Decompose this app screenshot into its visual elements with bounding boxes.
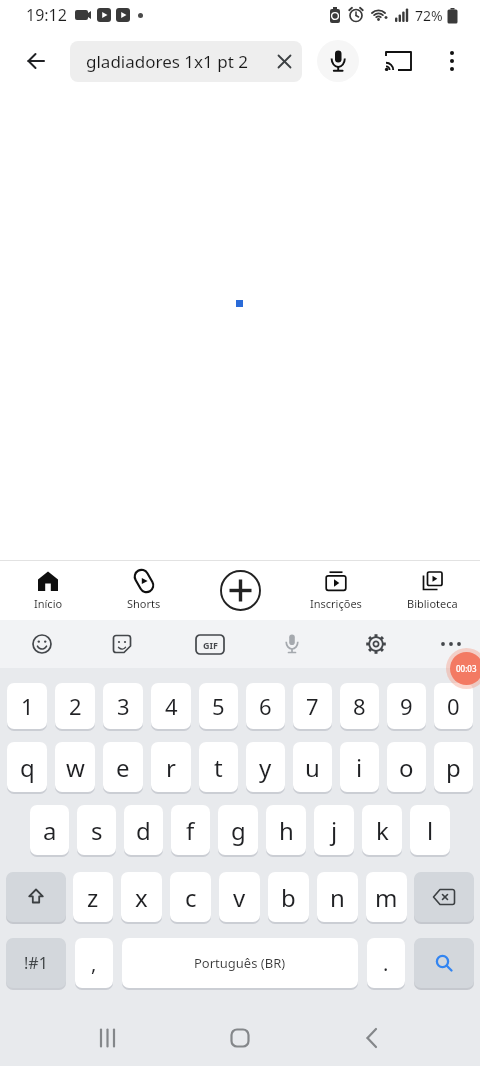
button[interactable]: 8 xyxy=(340,683,379,729)
button[interactable]: i xyxy=(340,742,379,792)
button[interactable]: t xyxy=(199,742,238,792)
button[interactable] xyxy=(434,43,470,79)
button[interactable] xyxy=(378,41,418,81)
staticText: h xyxy=(279,814,294,847)
button[interactable]: j xyxy=(314,805,354,855)
button[interactable] xyxy=(105,627,139,661)
button[interactable] xyxy=(414,872,474,922)
button[interactable]: z xyxy=(73,872,113,922)
button[interactable]: r xyxy=(151,742,191,792)
button[interactable]: m xyxy=(366,872,407,922)
staticText: d xyxy=(136,814,151,847)
button[interactable]: s xyxy=(77,805,116,855)
button[interactable] xyxy=(25,627,59,661)
button[interactable] xyxy=(6,872,66,922)
button[interactable]: b xyxy=(268,872,309,922)
button[interactable]: v xyxy=(219,872,260,922)
staticText: n xyxy=(330,881,345,914)
button[interactable]: k xyxy=(362,805,402,855)
button[interactable] xyxy=(359,627,393,661)
button[interactable]: 9 xyxy=(387,683,426,729)
staticText: 0 xyxy=(447,691,460,721)
staticText: !#1 xyxy=(24,952,48,974)
button[interactable]: y xyxy=(246,742,285,792)
button[interactable]: GIF xyxy=(191,625,229,663)
button[interactable]: p xyxy=(434,742,473,792)
staticText: Início xyxy=(34,596,63,611)
button[interactable] xyxy=(414,938,474,988)
button[interactable]: Início xyxy=(0,561,96,620)
staticText: p xyxy=(446,751,461,784)
staticText: c xyxy=(185,881,197,914)
button[interactable] xyxy=(192,561,288,620)
button[interactable]: 7 xyxy=(293,683,332,729)
button[interactable]: 1 xyxy=(7,683,47,729)
staticText: 19:12 xyxy=(26,4,67,26)
button[interactable]: 6 xyxy=(246,683,285,729)
button[interactable] xyxy=(14,39,58,83)
staticText: 4 xyxy=(165,691,178,721)
button[interactable]: w xyxy=(55,742,95,792)
staticText: j xyxy=(331,814,338,847)
staticText: 1 xyxy=(21,691,34,721)
staticText: Shorts xyxy=(127,596,161,611)
button[interactable] xyxy=(434,627,468,661)
button[interactable]: a xyxy=(30,805,69,855)
staticText: 72% xyxy=(415,6,443,25)
button[interactable]: q xyxy=(7,742,47,792)
button[interactable]: o xyxy=(387,742,426,792)
button[interactable] xyxy=(275,627,309,661)
staticText: . xyxy=(383,950,389,977)
staticText: z xyxy=(87,881,99,914)
staticText: i xyxy=(356,751,363,784)
staticText: y xyxy=(259,751,272,784)
staticText: 9 xyxy=(400,691,413,721)
button[interactable]: 4 xyxy=(151,683,191,729)
button[interactable]: 00:03 xyxy=(450,652,480,685)
staticText: x xyxy=(135,881,148,914)
button[interactable]: u xyxy=(293,742,332,792)
staticText: Inscrições xyxy=(310,596,362,611)
button[interactable]: Shorts xyxy=(96,561,192,620)
staticText: GIF xyxy=(203,639,218,651)
button[interactable]: l xyxy=(410,805,450,855)
staticText: a xyxy=(43,814,57,847)
button[interactable]: gladiadores 1x1 pt 2 xyxy=(70,41,302,82)
staticText: Português (BR) xyxy=(194,954,286,972)
button[interactable]: 2 xyxy=(55,683,95,729)
staticText: k xyxy=(376,814,389,847)
button[interactable] xyxy=(216,1014,264,1062)
button[interactable]: f xyxy=(171,805,210,855)
staticText: 2 xyxy=(69,691,82,721)
button[interactable]: 0 xyxy=(434,683,473,729)
staticText: m xyxy=(375,881,398,914)
button[interactable]: x xyxy=(121,872,162,922)
button[interactable] xyxy=(348,1014,396,1062)
staticText: 8 xyxy=(353,691,366,721)
button[interactable] xyxy=(84,1014,132,1062)
button[interactable]: Inscrições xyxy=(288,561,384,620)
button[interactable]: 5 xyxy=(199,683,238,729)
button[interactable]: Português (BR) xyxy=(122,938,358,988)
staticText: v xyxy=(233,881,246,914)
button[interactable]: e xyxy=(103,742,143,792)
button[interactable]: Biblioteca xyxy=(384,561,480,620)
button[interactable]: , xyxy=(75,938,113,988)
button[interactable]: c xyxy=(170,872,211,922)
button[interactable]: g xyxy=(218,805,258,855)
staticText: , xyxy=(91,950,97,977)
staticText: t xyxy=(214,751,223,784)
staticText: f xyxy=(186,814,195,847)
button[interactable]: !#1 xyxy=(6,938,66,988)
staticText: 00:03 xyxy=(456,663,477,674)
button[interactable]: 3 xyxy=(103,683,143,729)
button[interactable]: n xyxy=(317,872,358,922)
button[interactable] xyxy=(317,40,359,82)
button[interactable]: . xyxy=(367,938,405,988)
staticText: l xyxy=(427,814,434,847)
staticText: q xyxy=(20,751,35,784)
button[interactable] xyxy=(277,54,292,69)
button[interactable]: h xyxy=(266,805,306,855)
button[interactable]: d xyxy=(124,805,163,855)
staticText: g xyxy=(231,814,246,847)
